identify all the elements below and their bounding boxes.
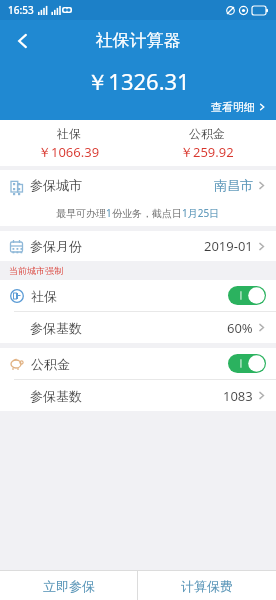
staticText: 公积金 (31, 356, 70, 372)
button[interactable]: 参保城市 (0, 170, 276, 200)
staticText: 立即参保 (43, 578, 95, 594)
button[interactable]: 公积金 开关 (228, 354, 266, 373)
staticText: 最早可办理 (56, 207, 106, 220)
staticText: 1083 (223, 387, 253, 405)
staticText: 公积金 (189, 126, 225, 141)
staticText: 16:53 (8, 3, 34, 17)
staticText: 60% (227, 319, 253, 337)
staticText: 社保计算器 (0, 30, 276, 51)
staticText: 查看明细 (211, 100, 255, 114)
button[interactable]: 立即参保 (0, 571, 137, 600)
button[interactable]: 参保基数 (0, 380, 276, 411)
button[interactable]: 社保 (0, 280, 276, 311)
staticText: 当前城市强制 (9, 265, 63, 276)
staticText: 1月25日 (182, 206, 220, 220)
staticText: 社保 (57, 126, 81, 141)
staticText: 南昌市 (214, 177, 253, 193)
button[interactable]: 参保基数 (0, 312, 276, 343)
button[interactable]: 计算保费 (138, 571, 276, 600)
staticText: ￥259.92 (180, 143, 234, 161)
staticText: 参保城市 (30, 177, 82, 193)
staticText: ￥1326.31 (0, 66, 276, 96)
button[interactable]: 查看明细 (207, 98, 270, 116)
staticText: 1 (106, 206, 112, 220)
staticText: 参保月份 (30, 238, 82, 254)
staticText: 份业务，截点日 (112, 207, 182, 220)
button[interactable]: 参保月份 (0, 231, 276, 261)
staticText: 计算保费 (181, 578, 233, 594)
staticText: 参保基数 (30, 320, 82, 336)
staticText: 2019-01 (204, 237, 253, 255)
staticText: 参保基数 (30, 388, 82, 404)
button[interactable]: Back (6, 24, 40, 58)
staticText: 社保 (31, 288, 57, 304)
button[interactable]: 社保 开关 (228, 286, 266, 305)
button[interactable]: 公积金 (0, 348, 276, 379)
staticText: ￥1066.39 (38, 143, 100, 161)
